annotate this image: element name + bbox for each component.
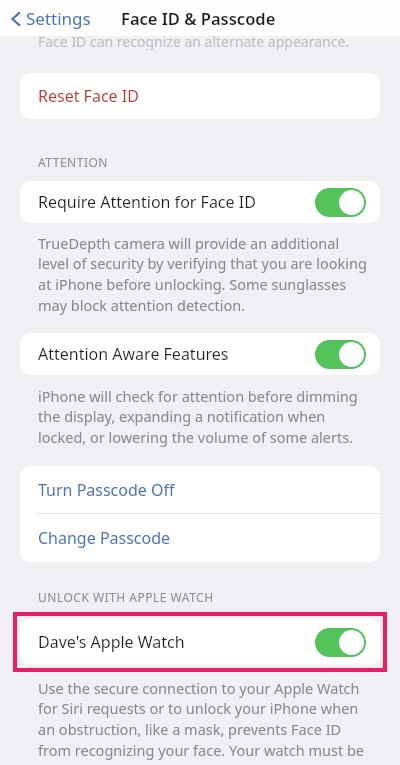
staticText: ATTENTION [38, 154, 108, 170]
staticText: Use the secure connection to your Apple … [38, 678, 368, 765]
staticText: iPhone will check for attention before d… [38, 386, 368, 448]
button[interactable]: Settings [10, 7, 91, 30]
button[interactable]: Change Passcode [20, 514, 380, 562]
staticText: Face ID & Passcode [121, 7, 276, 29]
button[interactable]: Turn Passcode Off [20, 466, 380, 513]
button[interactable]: Toggle on [315, 340, 366, 369]
staticText: TrueDepth camera will provide an additio… [38, 233, 368, 316]
staticText: Reset Face ID [38, 85, 139, 107]
staticText: Change Passcode [38, 527, 171, 549]
staticText: Dave's Apple Watch [38, 631, 185, 653]
staticText: Require Attention for Face ID [38, 191, 256, 213]
button[interactable]: Require Attention for Face ID [20, 181, 380, 223]
staticText: Attention Aware Features [38, 343, 229, 365]
staticText: Face ID can recognize an alternate appea… [38, 32, 350, 50]
button[interactable]: Toggle on [315, 628, 366, 657]
button[interactable]: Dave's Apple Watch [20, 619, 380, 665]
button[interactable]: Attention Aware Features [20, 333, 380, 375]
button[interactable]: Toggle on [315, 188, 366, 217]
staticText: Settings [26, 7, 91, 30]
staticText: Turn Passcode Off [38, 479, 175, 501]
button[interactable]: Reset Face ID [20, 73, 380, 119]
staticText: UNLOCK WITH APPLE WATCH [38, 589, 214, 605]
